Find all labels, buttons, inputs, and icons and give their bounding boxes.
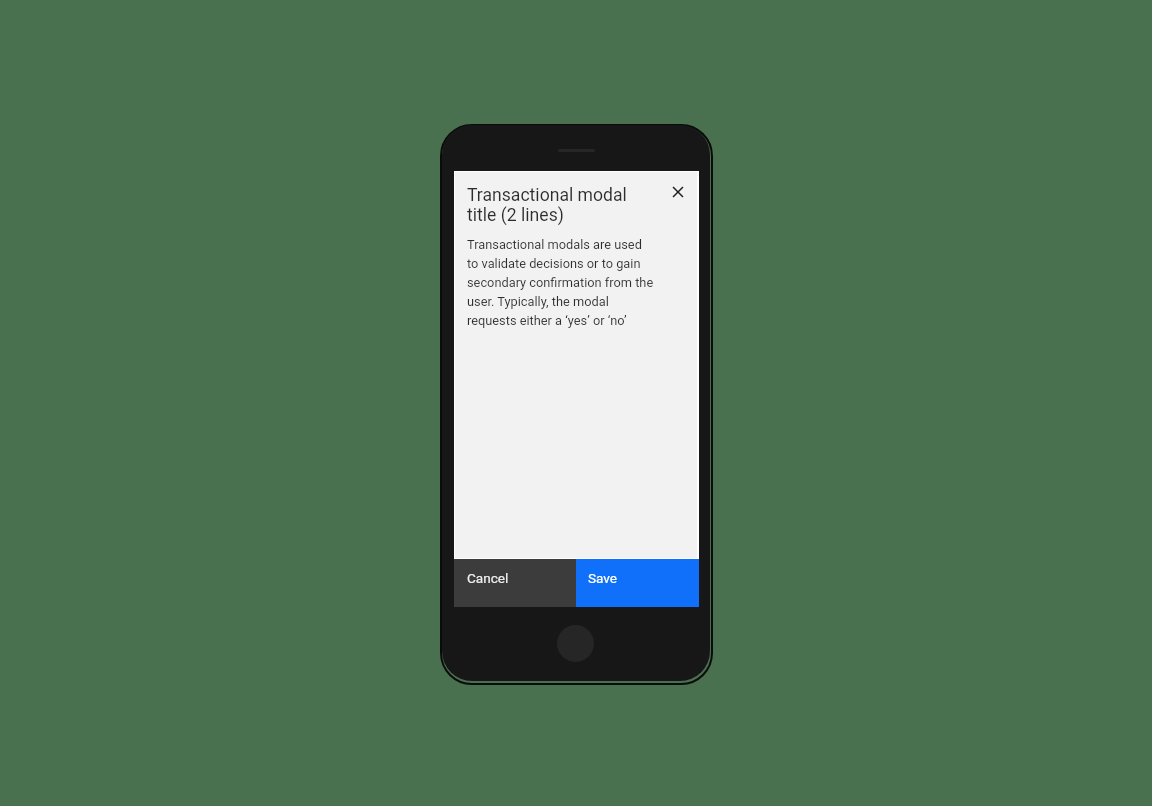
staticText: Save	[588, 570, 618, 586]
button[interactable]: Cancel	[454, 559, 576, 607]
staticText: Transactional modal title (2 lines)	[467, 185, 627, 225]
staticText: Transactional modals are used to validat…	[467, 234, 654, 329]
staticText: Cancel	[467, 570, 509, 586]
button[interactable]: Save	[576, 559, 699, 607]
button[interactable]: Close	[664, 178, 692, 206]
